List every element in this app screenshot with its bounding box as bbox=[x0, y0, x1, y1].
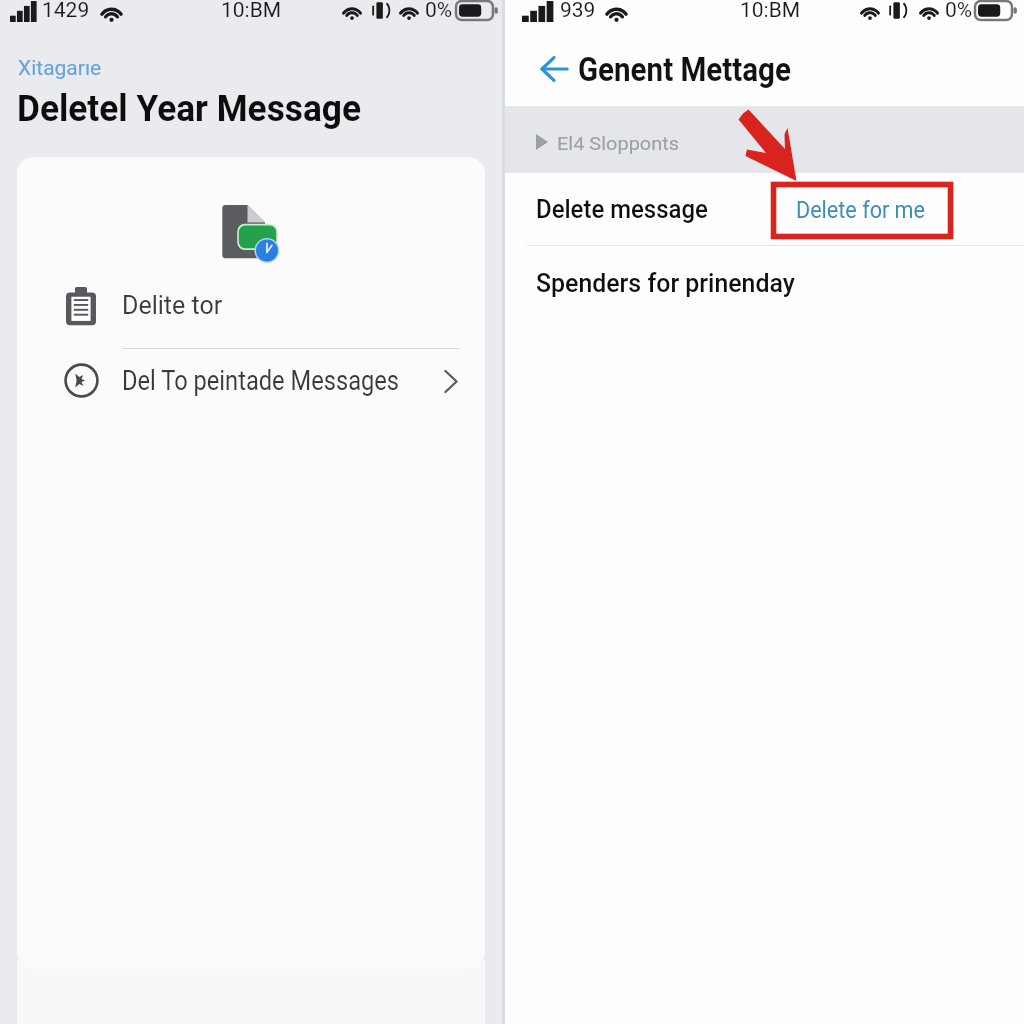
staticText: Spenders for prinenday bbox=[536, 269, 796, 298]
staticText: 0% bbox=[425, 0, 453, 23]
staticText: 10:BM bbox=[740, 0, 801, 23]
button[interactable]: Delite tor bbox=[17, 275, 485, 337]
button[interactable]: Del To peintade Messages bbox=[17, 352, 485, 414]
button[interactable]: Back bbox=[532, 47, 575, 90]
staticText: Xitagarıe bbox=[18, 56, 102, 81]
staticText: 939 bbox=[560, 0, 596, 23]
button[interactable]: Delete for me bbox=[784, 188, 936, 232]
staticText: Del To peintade Messages bbox=[122, 365, 400, 397]
staticText: Deletel Year Message bbox=[17, 88, 362, 130]
staticText: El4 Slopponts bbox=[557, 132, 680, 154]
staticText: Genent Mettage bbox=[578, 50, 791, 89]
staticText: Delete message bbox=[536, 195, 708, 224]
staticText: Delite tor bbox=[122, 291, 223, 320]
button[interactable]: Delete message bbox=[517, 180, 737, 228]
button[interactable]: Xitagarıe bbox=[14, 52, 108, 84]
staticText: 10:BM bbox=[221, 0, 282, 23]
button[interactable]: Spenders for prinenday bbox=[517, 254, 827, 302]
button[interactable]: El4 Slopponts bbox=[505, 106, 1024, 173]
staticText: 0% bbox=[945, 0, 973, 23]
staticText: 1429 bbox=[42, 0, 90, 23]
staticText: Delete for me bbox=[796, 197, 925, 224]
